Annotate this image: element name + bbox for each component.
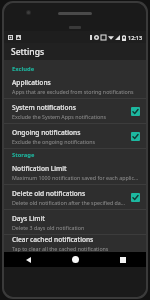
staticText: Apps that are excluded from storing noti… — [12, 88, 134, 95]
button[interactable]: Back — [4, 252, 52, 267]
staticText: Days Limit — [12, 214, 45, 223]
staticText: Notification Limit — [12, 164, 67, 173]
button[interactable]: Toggle setting — [131, 107, 140, 116]
staticText: Tap to clear all the cached notification… — [12, 245, 109, 252]
button[interactable]: Toggle setting — [131, 132, 140, 141]
button[interactable]: Toggle setting — [131, 193, 140, 202]
staticText: Exclude the System Apps notifications — [12, 113, 106, 120]
staticText: Exclude — [12, 65, 35, 73]
button[interactable]: Applications — [4, 74, 146, 98]
staticText: System notifications — [12, 103, 76, 112]
button[interactable]: Recent apps — [99, 252, 146, 267]
button[interactable]: Home — [52, 252, 99, 267]
button[interactable]: Delete old notifications — [4, 185, 146, 209]
button[interactable]: Notification Limit — [4, 160, 146, 184]
button[interactable]: System notifications — [4, 99, 146, 123]
button[interactable]: Ongoing notifications — [4, 124, 146, 148]
staticText: Storage — [12, 151, 35, 159]
button[interactable]: Clear cached notifications — [4, 235, 146, 252]
staticText: Clear cached notifications — [12, 235, 94, 244]
staticText: Delete old notifications — [12, 189, 86, 198]
staticText: 12:13 — [128, 34, 143, 41]
staticText: Maximum 1000 notification saved for each… — [12, 174, 140, 181]
button[interactable]: Days Limit — [4, 210, 146, 234]
staticText: Delete old notification after the specif… — [12, 199, 127, 206]
staticText: Exclude the ongoing notifications — [12, 138, 95, 145]
staticText: Delete 3 days old notification — [12, 224, 85, 231]
staticText: Settings — [11, 46, 45, 58]
staticText: Ongoing notifications — [12, 128, 81, 137]
staticText: Applications — [12, 78, 51, 87]
